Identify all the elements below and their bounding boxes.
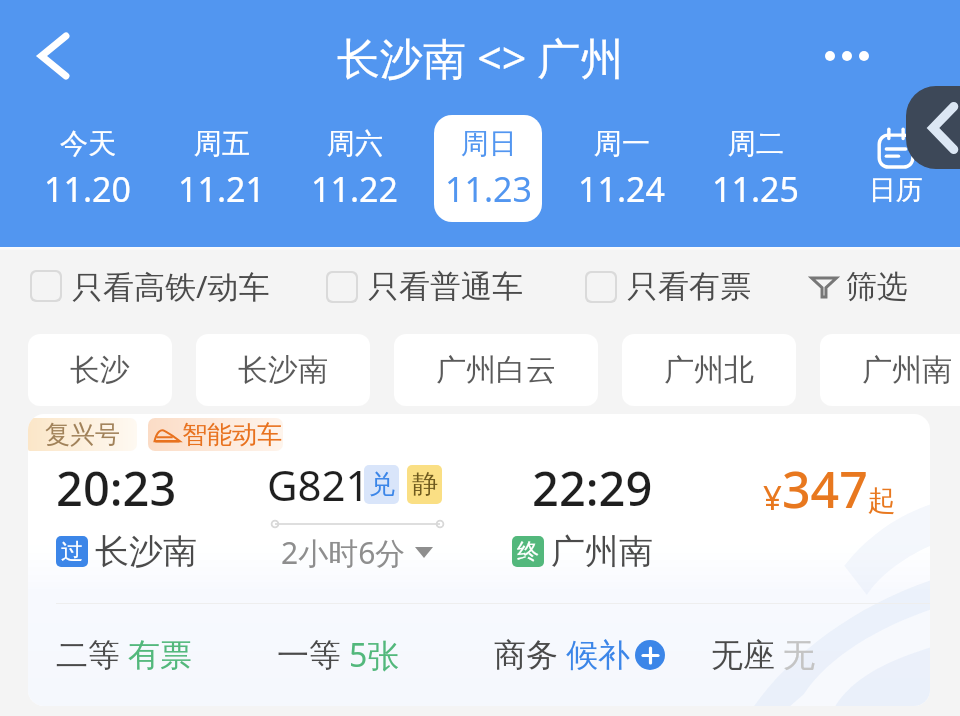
staticText: 长沙南 <> 广州 — [337, 28, 624, 87]
staticText: 无 — [783, 635, 815, 675]
staticText: 有票 — [128, 635, 192, 675]
button[interactable]: 复兴号 — [28, 414, 930, 706]
button[interactable]: 筛选 — [806, 267, 912, 306]
staticText: G821 — [267, 456, 370, 513]
staticText: 周二 — [728, 126, 784, 161]
staticText: 兑 — [369, 468, 395, 501]
staticText: 周六 — [327, 126, 383, 161]
button[interactable]: 广州南 — [820, 334, 960, 406]
staticText: 筛选 — [846, 267, 908, 306]
staticText: 无座 — [711, 635, 775, 675]
button[interactable]: 长沙南 — [196, 334, 370, 406]
staticText: 广州北 — [664, 351, 754, 389]
button[interactable]: More options — [812, 21, 882, 91]
staticText: 22:29 — [532, 456, 653, 520]
staticText: 广州南 — [862, 351, 952, 389]
staticText: 周五 — [194, 126, 250, 161]
staticText: 长沙南 — [238, 351, 328, 389]
staticText: 11.20 — [44, 166, 131, 212]
staticText: 周一 — [594, 126, 650, 161]
staticText: 商务 — [494, 635, 558, 675]
staticText: 终 — [517, 538, 539, 566]
staticText: 11.24 — [578, 166, 665, 212]
staticText: 11.21 — [178, 166, 265, 212]
button[interactable]: 长沙 — [28, 334, 172, 406]
staticText: 起 — [868, 483, 896, 518]
button[interactable]: 广州北 — [622, 334, 796, 406]
button[interactable]: 一等 — [277, 633, 400, 677]
button[interactable]: 周日 — [434, 115, 542, 222]
staticText: 347 — [782, 455, 868, 523]
button[interactable]: 广州白云 — [394, 334, 598, 406]
button[interactable]: Back gesture handle — [906, 86, 960, 169]
staticText: 一等 — [277, 635, 341, 675]
staticText: 广州白云 — [436, 351, 556, 389]
button[interactable]: Calendar — [846, 116, 946, 223]
staticText: 2小时6分 — [281, 532, 406, 573]
staticText: ¥ — [763, 475, 782, 520]
staticText: 周日 — [461, 126, 517, 161]
button[interactable]: 无座 — [711, 635, 815, 675]
staticText: 静 — [412, 468, 438, 501]
button[interactable]: 今天 — [33, 115, 141, 222]
staticText: 只看普通车 — [368, 267, 523, 306]
button[interactable]: 只看有票 — [585, 267, 751, 306]
staticText: 日历 — [869, 173, 923, 207]
staticText: 长沙 — [70, 351, 130, 389]
button[interactable]: 只看高铁/动车 — [30, 265, 270, 307]
staticText: 20:23 — [56, 456, 177, 520]
staticText: 智能动车 — [182, 419, 282, 450]
staticText: 只看有票 — [627, 267, 751, 306]
staticText: 候补 — [566, 635, 630, 675]
staticText: 今天 — [60, 126, 116, 161]
button[interactable]: 只看普通车 — [326, 267, 523, 306]
button[interactable]: 周五 — [167, 115, 275, 222]
staticText: 过 — [61, 538, 83, 566]
staticText: 二等 — [56, 635, 120, 675]
staticText: 长沙南 — [95, 530, 197, 573]
staticText: 复兴号 — [45, 419, 120, 450]
staticText: 11.25 — [712, 166, 799, 212]
button[interactable]: 周一 — [567, 115, 675, 222]
button[interactable]: 二等 — [56, 635, 192, 675]
staticText: 5张 — [349, 633, 400, 677]
staticText: 广州南 — [551, 530, 653, 573]
button[interactable]: 周六 — [300, 115, 408, 222]
button[interactable]: 商务 — [494, 635, 665, 675]
button[interactable]: Back — [20, 23, 86, 89]
staticText: 11.23 — [445, 166, 532, 212]
button[interactable]: 周二 — [701, 115, 809, 222]
staticText: 只看高铁/动车 — [72, 265, 270, 307]
staticText: 11.22 — [311, 166, 398, 212]
